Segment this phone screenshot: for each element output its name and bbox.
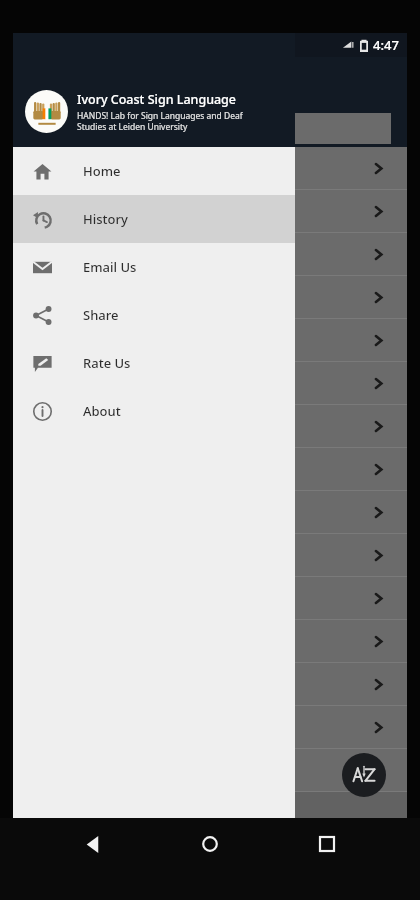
button[interactable]: Back	[69, 820, 117, 868]
button[interactable]: Email Us	[13, 243, 295, 291]
button[interactable]	[13, 319, 407, 362]
staticText: History	[83, 210, 128, 228]
button[interactable]	[13, 706, 407, 749]
staticText: Home	[83, 162, 121, 180]
button[interactable]	[13, 620, 407, 663]
button[interactable]	[13, 534, 407, 577]
button[interactable]: Share	[13, 291, 295, 339]
button[interactable]	[13, 147, 407, 190]
staticText: Ivory Coast Sign Language	[77, 91, 237, 108]
staticText: Share	[83, 306, 119, 324]
button[interactable]	[13, 405, 407, 448]
button[interactable]	[13, 362, 407, 405]
button[interactable]: Home	[186, 820, 234, 868]
staticText: 4:47	[373, 36, 399, 54]
button[interactable]	[13, 749, 407, 792]
button[interactable]	[17, 113, 391, 144]
button[interactable]	[13, 276, 407, 319]
button[interactable]: Rate Us	[13, 339, 295, 387]
button[interactable]: Sort A to Z	[342, 753, 386, 797]
staticText: About	[83, 402, 121, 420]
button[interactable]	[13, 233, 407, 276]
button[interactable]: Recent apps	[303, 820, 351, 868]
button[interactable]: About	[13, 387, 295, 435]
button[interactable]: Home	[13, 147, 295, 195]
staticText: HANDS! Lab for Sign Languages and Deaf S…	[77, 110, 243, 132]
button[interactable]	[13, 448, 407, 491]
button[interactable]	[13, 491, 407, 534]
button[interactable]	[13, 190, 407, 233]
button[interactable]	[13, 577, 407, 620]
button[interactable]	[13, 663, 407, 706]
staticText: Rate Us	[83, 354, 131, 372]
button[interactable]: History	[13, 195, 295, 243]
staticText: Email Us	[83, 258, 137, 276]
